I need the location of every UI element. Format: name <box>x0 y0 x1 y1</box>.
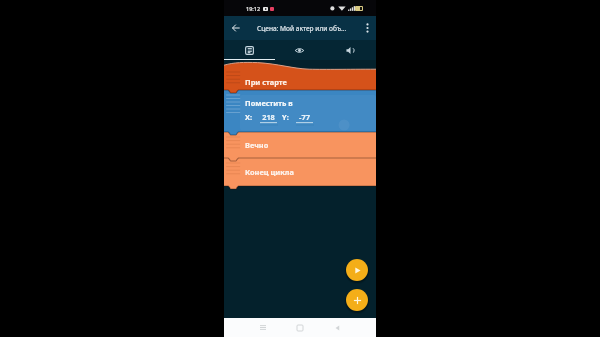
staticText: 19:12 <box>246 5 261 12</box>
button[interactable]: More options <box>358 16 376 40</box>
staticText: При старте <box>245 77 287 87</box>
staticText: -77 <box>296 112 313 122</box>
staticText: Поместить в <box>245 98 293 108</box>
staticText: 218 <box>260 112 277 122</box>
button[interactable]: Sound <box>325 40 376 60</box>
button[interactable]: Home <box>291 318 309 337</box>
button[interactable]: Back <box>328 318 346 337</box>
staticText: Вечно <box>245 140 269 150</box>
button[interactable]: Script <box>224 40 274 60</box>
button[interactable]: Recent apps <box>254 318 272 337</box>
button[interactable]: 218 <box>260 112 277 125</box>
button[interactable]: Run <box>344 257 370 283</box>
button[interactable]: Конец цикла <box>224 158 376 186</box>
button[interactable]: Preview <box>274 40 325 60</box>
button[interactable]: Add <box>344 287 370 313</box>
staticText: X: <box>245 112 253 122</box>
button[interactable]: Back <box>224 16 246 40</box>
button[interactable]: Поместить в <box>224 90 376 132</box>
staticText: Сцена: Мой актер или объ… <box>257 24 347 33</box>
staticText: Y: <box>282 112 289 122</box>
button[interactable]: При старте <box>224 63 376 90</box>
button[interactable]: -77 <box>296 112 313 125</box>
staticText: Конец цикла <box>245 167 294 177</box>
button[interactable]: Вечно <box>224 132 376 158</box>
